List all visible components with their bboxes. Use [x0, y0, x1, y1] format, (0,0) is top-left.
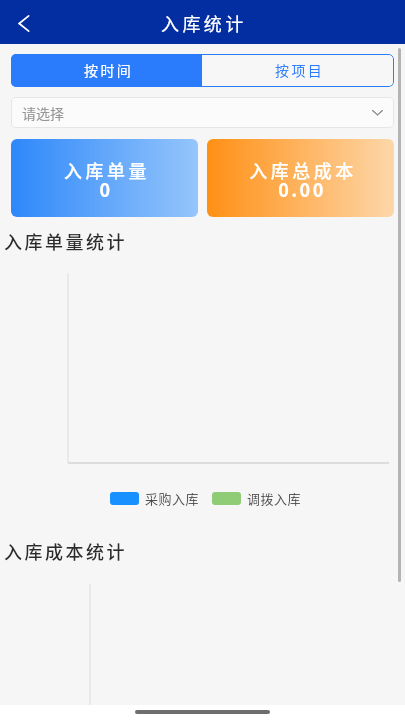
- staticText: 入库单量: [64, 157, 150, 183]
- button[interactable]: 入库总成本: [207, 139, 394, 217]
- staticText: 入库成本统计: [4, 538, 127, 564]
- button[interactable]: 入库单量: [11, 139, 198, 217]
- staticText: 入库总成本: [249, 157, 357, 183]
- staticText: 按时间: [84, 60, 134, 80]
- staticText: 入库单量统计: [4, 228, 127, 254]
- button[interactable]: 请选择: [11, 97, 394, 128]
- button[interactable]: Back: [0, 0, 42, 44]
- staticText: 请选择: [22, 103, 64, 123]
- button[interactable]: 按时间: [11, 54, 202, 87]
- staticText: 按项目: [275, 60, 325, 80]
- staticText: 0.00: [278, 176, 326, 202]
- staticText: 调拨入库: [247, 489, 302, 508]
- button[interactable]: 按项目: [202, 54, 394, 87]
- staticText: 采购入库: [145, 489, 200, 508]
- staticText: 入库统计: [161, 10, 247, 36]
- staticText: 0: [99, 176, 113, 202]
